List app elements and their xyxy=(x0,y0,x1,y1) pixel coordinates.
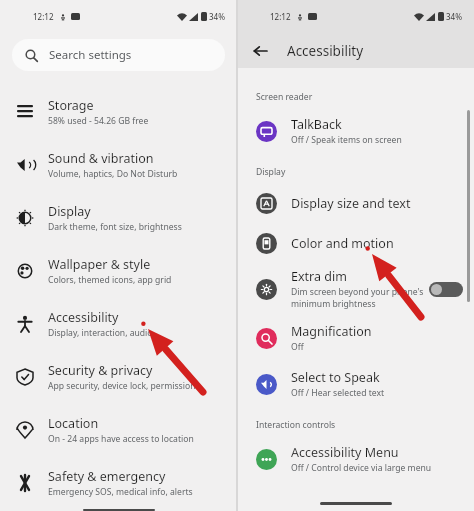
staticText: Dark theme, font size, brightness xyxy=(48,221,182,233)
staticText: Interaction controls xyxy=(256,419,336,431)
staticText: 34% xyxy=(209,11,225,22)
button[interactable]: Extra dim toggle xyxy=(429,282,463,297)
button[interactable]: Safety & emergency xyxy=(0,456,237,509)
staticText: Wallpaper & style xyxy=(48,256,151,273)
staticText: Accessibility Menu xyxy=(291,444,399,461)
button[interactable]: Color and motion xyxy=(237,223,474,263)
staticText: Display xyxy=(256,166,286,178)
staticText: Emergency SOS, medical info, alerts xyxy=(48,486,193,498)
staticText: Display xyxy=(48,203,91,220)
staticText: Search settings xyxy=(49,47,132,63)
staticText: Dim screen beyond your phone's minimum b… xyxy=(291,286,424,310)
button[interactable]: Magnification xyxy=(237,315,474,361)
staticText: Display, interaction, audio xyxy=(48,327,153,339)
staticText: Off / Control device via large menu xyxy=(291,462,432,474)
staticText: Location xyxy=(48,415,99,432)
staticText: Extra dim xyxy=(291,268,347,285)
staticText: Off xyxy=(291,341,304,353)
staticText: Select to Speak xyxy=(291,369,380,386)
button[interactable]: Accessibility Menu xyxy=(237,436,474,482)
staticText: 34% xyxy=(446,11,462,22)
button[interactable]: Back xyxy=(247,38,273,64)
staticText: Security & privacy xyxy=(48,362,153,379)
staticText: Volume, haptics, Do Not Disturb xyxy=(48,168,178,180)
staticText: Screen reader xyxy=(256,91,313,103)
staticText: TalkBack xyxy=(291,116,342,133)
button[interactable]: Display xyxy=(0,191,237,244)
staticText: Off / Hear selected text xyxy=(291,387,385,399)
staticText: Sound & vibration xyxy=(48,150,154,167)
button[interactable]: Location xyxy=(0,403,237,456)
staticText: 12:12 xyxy=(270,11,291,22)
staticText: Display size and text xyxy=(291,195,411,212)
staticText: Magnification xyxy=(291,323,372,340)
button[interactable]: Wallpaper & style xyxy=(0,244,237,297)
staticText: On - 24 apps have access to location xyxy=(48,433,194,445)
staticText: Accessibility xyxy=(48,309,119,326)
staticText: Colors, themed icons, app grid xyxy=(48,274,172,286)
button[interactable]: Security & privacy xyxy=(0,350,237,403)
button[interactable]: Sound & vibration xyxy=(0,138,237,191)
staticText: 12:12 xyxy=(33,11,54,22)
button[interactable]: Extra dim xyxy=(237,263,474,315)
staticText: Off / Speak items on screen xyxy=(291,134,402,146)
button[interactable]: Display size and text xyxy=(237,183,474,223)
button[interactable]: TalkBack xyxy=(237,108,474,154)
staticText: Accessibility xyxy=(287,42,364,60)
button[interactable]: Search settings xyxy=(12,39,225,71)
button[interactable]: Storage xyxy=(0,85,237,138)
button[interactable]: Accessibility xyxy=(0,297,237,350)
button[interactable]: Select to Speak xyxy=(237,361,474,407)
staticText: 58% used - 54.26 GB free xyxy=(48,115,149,127)
staticText: Color and motion xyxy=(291,235,394,252)
staticText: Storage xyxy=(48,97,94,114)
staticText: App security, device lock, permissions xyxy=(48,380,200,392)
staticText: Safety & emergency xyxy=(48,468,166,485)
